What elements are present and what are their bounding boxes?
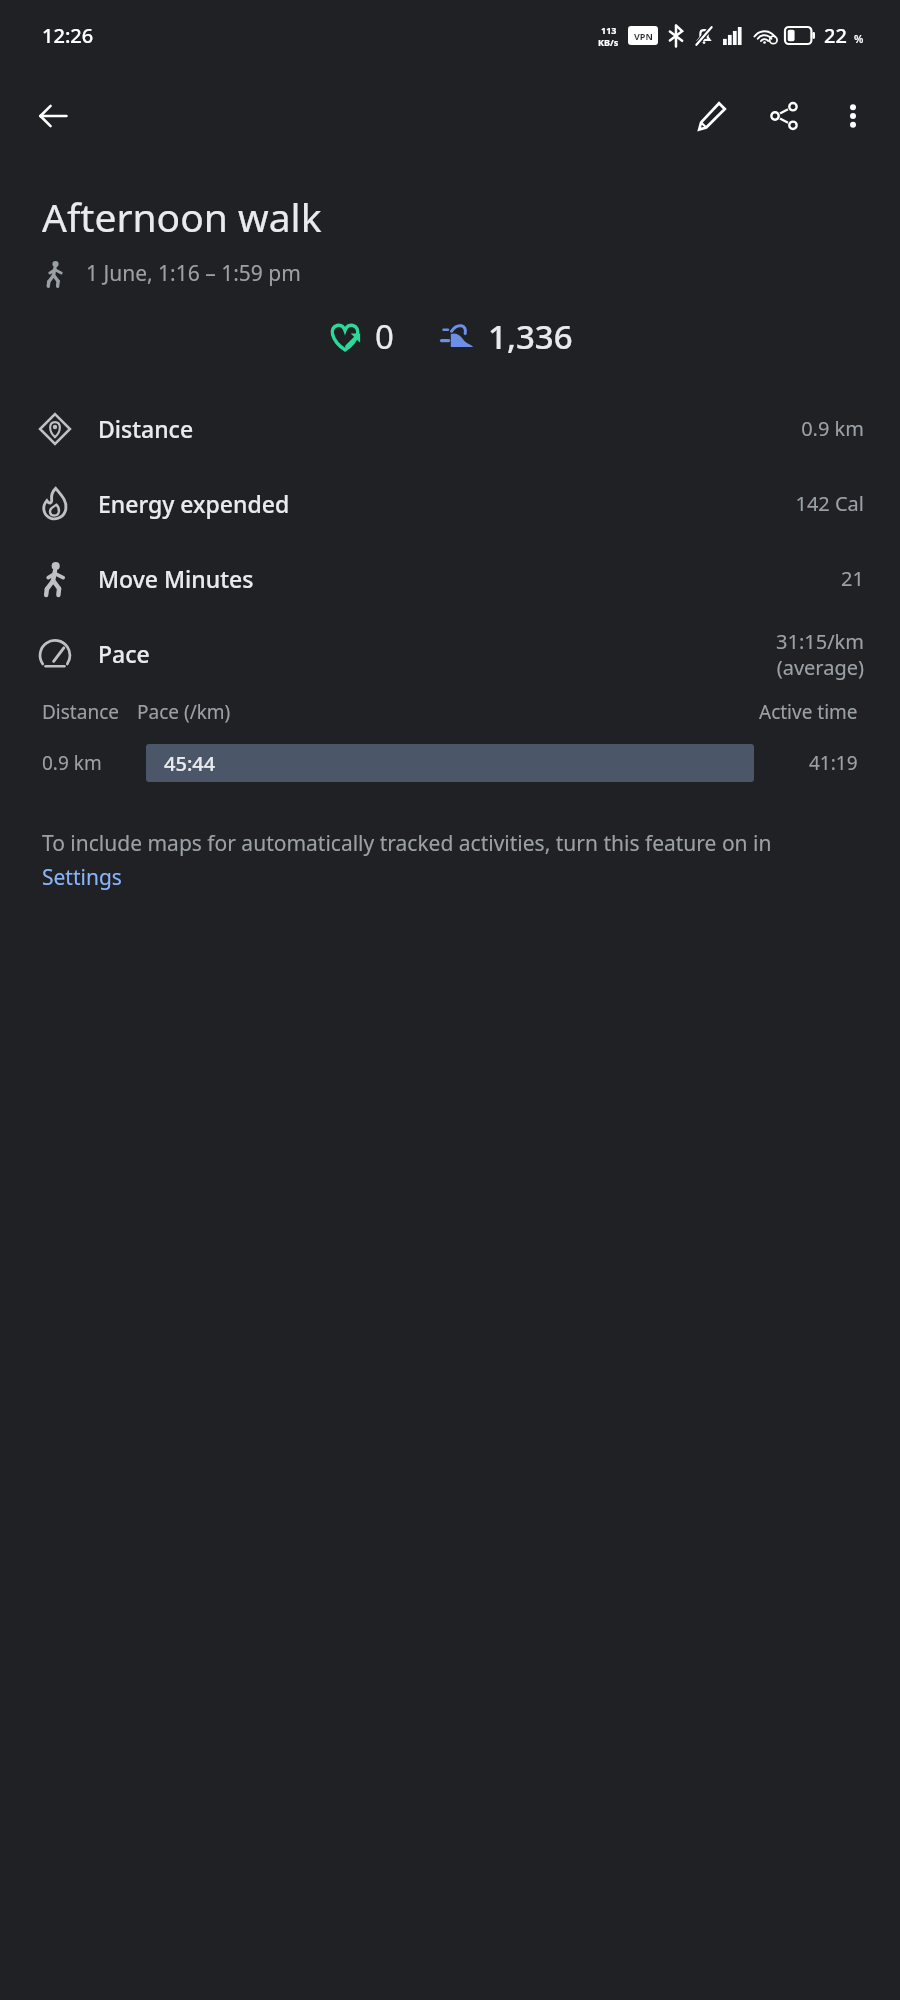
staticText: 21 [841, 565, 864, 592]
button[interactable]: 1,336 [440, 314, 573, 359]
button[interactable]: Edit [676, 80, 748, 152]
staticText: 22 [824, 22, 847, 49]
staticText: Energy expended [98, 488, 290, 519]
staticText: 1 June, 1:16 – 1:59 pm [86, 259, 301, 288]
button[interactable]: To include maps for automatically tracke… [42, 829, 840, 891]
staticText: 41:19 [809, 750, 858, 776]
button[interactable]: 0 [327, 314, 394, 359]
staticText: Pace (/km) [137, 699, 231, 725]
button[interactable]: Share [748, 80, 820, 152]
staticText: 0.9 km [801, 415, 864, 442]
staticText: % [854, 31, 864, 46]
button[interactable]: Energy expended [0, 466, 900, 541]
staticText: 12:26 [42, 22, 94, 49]
staticText: Distance [98, 413, 194, 444]
button[interactable]: More options [820, 83, 886, 149]
staticText: Afternoon walk [42, 190, 322, 243]
staticText: 0.9 km [42, 750, 102, 776]
staticText: 45:44 [164, 750, 216, 777]
button[interactable]: Move Minutes [0, 541, 900, 616]
staticText: 142 Cal [795, 490, 864, 517]
button[interactable]: Pace [0, 616, 900, 691]
button[interactable]: 45:44 [146, 744, 754, 782]
staticText: To include maps for automatically tracke… [42, 829, 840, 891]
staticText: Move Minutes [98, 563, 254, 594]
button[interactable]: Distance [0, 391, 900, 466]
staticText: Distance [42, 699, 119, 725]
staticText: Active time [759, 699, 858, 725]
staticText: 1,336 [488, 314, 573, 359]
staticText: 31:15/km (average) [776, 628, 864, 680]
staticText: VPN [634, 30, 653, 42]
staticText: KB/s [598, 36, 619, 48]
button[interactable]: Back [22, 85, 84, 147]
staticText: 113 [601, 24, 617, 36]
staticText: Pace [98, 638, 150, 669]
staticText: 0 [375, 314, 394, 359]
